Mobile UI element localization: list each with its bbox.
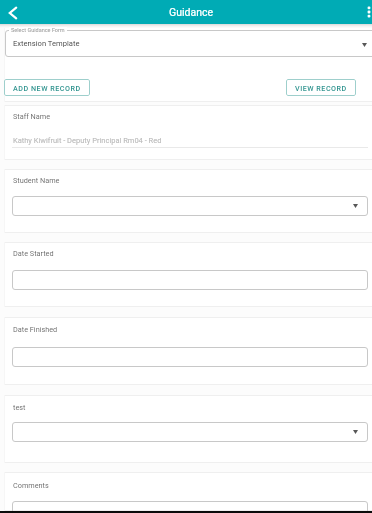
staticText: ADD NEW RECORD	[13, 84, 81, 92]
staticText: Select Guidance Form	[11, 27, 65, 33]
button[interactable]: ADD NEW RECORD	[4, 79, 90, 96]
staticText: Date Finished	[13, 325, 58, 334]
button[interactable]	[12, 422, 368, 442]
button[interactable]: More options	[362, 5, 372, 19]
button[interactable]	[12, 196, 368, 216]
button[interactable]: Extension Template	[5, 30, 372, 57]
staticText: VIEW RECORD	[295, 84, 347, 92]
staticText: Comments	[13, 481, 49, 490]
staticText: Student Name	[13, 176, 60, 185]
button[interactable]: VIEW RECORD	[286, 79, 356, 96]
staticText: Date Started	[13, 249, 54, 258]
staticText: test	[13, 403, 26, 412]
staticText: Extension Template	[13, 39, 80, 48]
staticText: Staff Name	[13, 112, 51, 121]
button[interactable]	[12, 270, 368, 290]
button[interactable]	[12, 501, 368, 513]
staticText: Kathy Kiwifruit - Deputy Principal Rm04 …	[13, 136, 162, 145]
staticText: Guidance	[169, 6, 213, 18]
button[interactable]	[12, 347, 368, 367]
button[interactable]: Back	[1, 1, 25, 25]
